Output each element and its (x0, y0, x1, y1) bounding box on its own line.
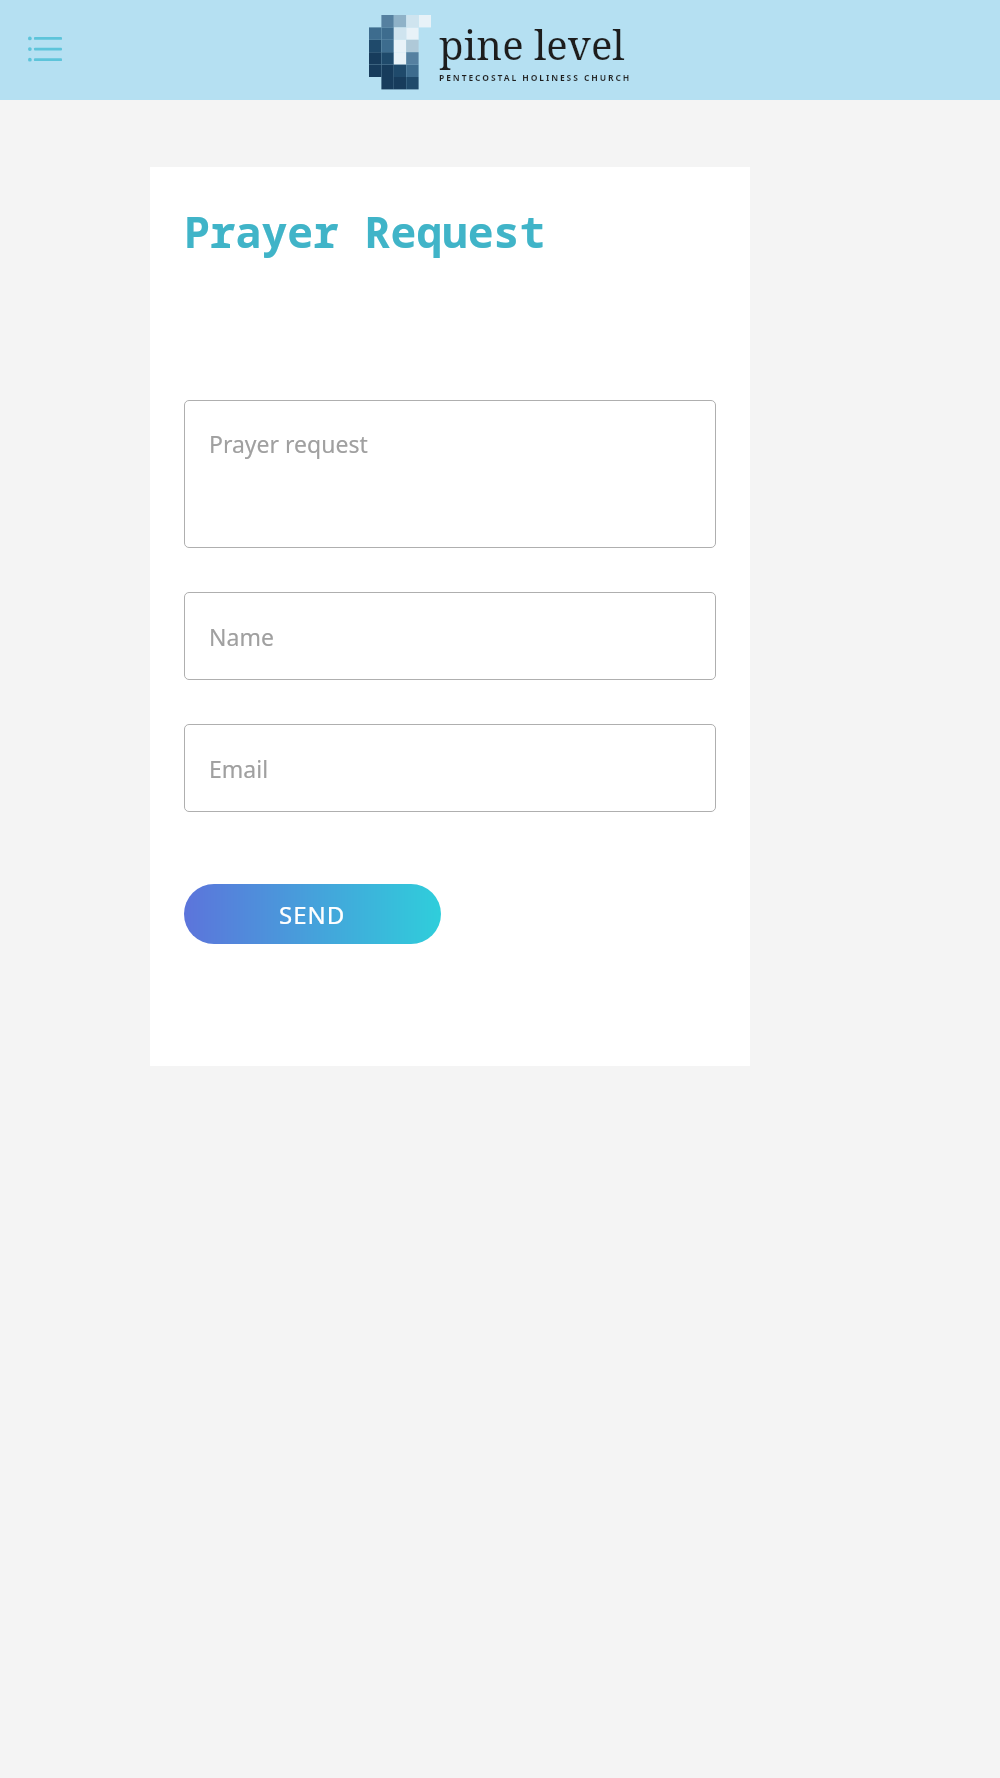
button[interactable]: Prayer request (184, 400, 716, 548)
button[interactable]: Name (184, 592, 716, 680)
staticText: PENTECOSTAL HOLINESS CHURCH (439, 72, 632, 84)
staticText: Prayer Request (184, 202, 546, 261)
button[interactable]: Open navigation menu (14, 19, 76, 81)
staticText: Name (209, 621, 274, 652)
button[interactable]: Email (184, 724, 716, 812)
staticText: SEND (279, 898, 346, 931)
button[interactable]: SEND (184, 884, 441, 944)
staticText: pine level (439, 17, 625, 71)
staticText: Prayer request (209, 428, 368, 459)
staticText: Email (209, 753, 269, 784)
